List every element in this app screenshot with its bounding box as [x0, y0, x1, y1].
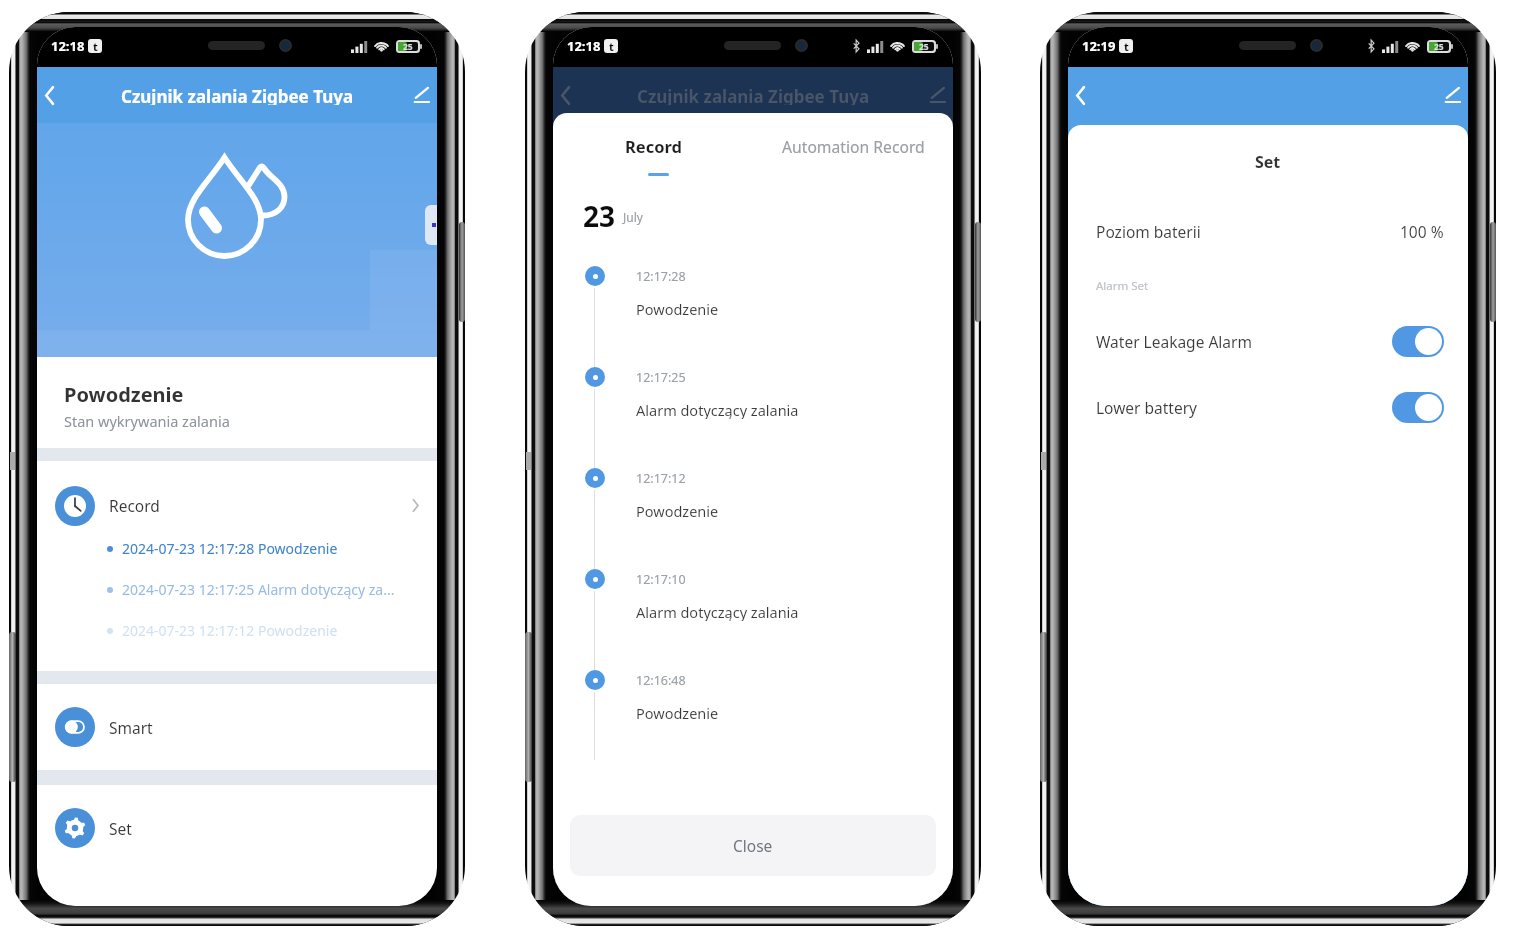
button[interactable]: Back: [553, 78, 578, 112]
button[interactable]: Poziom baterii: [1068, 214, 1468, 248]
button[interactable]: Water Leakage Alarm: [1068, 324, 1468, 358]
staticText: Record: [109, 495, 160, 516]
staticText: 12:16:48: [636, 672, 686, 689]
button[interactable]: Back: [1068, 78, 1093, 112]
button[interactable]: Record: [37, 461, 437, 550]
button[interactable]: Edit: [1437, 78, 1468, 112]
staticText: Alarm dotyczący zalania: [636, 400, 799, 419]
staticText: 12:19: [1082, 37, 1116, 55]
staticText: 2024-07-23 12:17:12 Powodzenie: [122, 621, 338, 640]
staticText: 25: [1434, 41, 1444, 53]
button[interactable]: Automation Record: [753, 132, 953, 160]
button[interactable]: Powodzenie: [37, 357, 437, 448]
staticText: 12:17:10: [636, 571, 686, 588]
staticText: Set: [1255, 151, 1281, 173]
staticText: Stan wykrywania zalania: [64, 411, 230, 431]
button[interactable]: Edit: [922, 78, 953, 112]
staticText: July: [623, 209, 643, 225]
staticText: Alarm Set: [1096, 278, 1149, 294]
staticText: 23: [583, 197, 616, 227]
staticText: 25: [403, 41, 413, 53]
button[interactable]: Smart: [37, 684, 437, 770]
button[interactable]: Record: [553, 132, 753, 160]
staticText: t: [93, 39, 98, 53]
button[interactable]: Lower battery: [1068, 390, 1468, 424]
button[interactable]: Back: [37, 78, 62, 112]
staticText: Czujnik zalania Zigbee Tuya: [637, 85, 870, 105]
staticText: 12:18: [51, 37, 85, 55]
button[interactable]: Edit: [406, 78, 437, 112]
staticText: t: [1124, 39, 1129, 53]
staticText: Powodzenie: [64, 381, 184, 405]
staticText: Automation Record: [782, 136, 925, 157]
staticText: 2024-07-23 12:17:25 Alarm dotyczący za..…: [122, 580, 395, 599]
staticText: 12:17:28: [636, 268, 686, 285]
staticText: Czujnik zalania Zigbee Tuya: [121, 85, 354, 105]
button[interactable]: Set: [37, 785, 437, 871]
staticText: Poziom baterii: [1096, 221, 1201, 242]
staticText: Powodzenie: [636, 501, 719, 520]
staticText: 100 %: [1400, 221, 1444, 242]
staticText: Smart: [109, 717, 153, 738]
staticText: Close: [733, 835, 773, 856]
staticText: Water Leakage Alarm: [1096, 331, 1252, 352]
staticText: Record: [625, 135, 682, 157]
staticText: Set: [109, 818, 132, 839]
staticText: 25: [919, 41, 929, 53]
staticText: Powodzenie: [636, 703, 719, 722]
staticText: 12:18: [567, 37, 601, 55]
staticText: t: [609, 39, 614, 53]
button[interactable]: Close: [570, 815, 936, 876]
staticText: Lower battery: [1096, 397, 1198, 418]
staticText: 2024-07-23 12:17:28 Powodzenie: [122, 539, 338, 558]
staticText: 12:17:12: [636, 470, 686, 487]
staticText: Powodzenie: [636, 299, 719, 318]
staticText: 12:17:25: [636, 369, 686, 386]
staticText: Alarm dotyczący zalania: [636, 602, 799, 621]
